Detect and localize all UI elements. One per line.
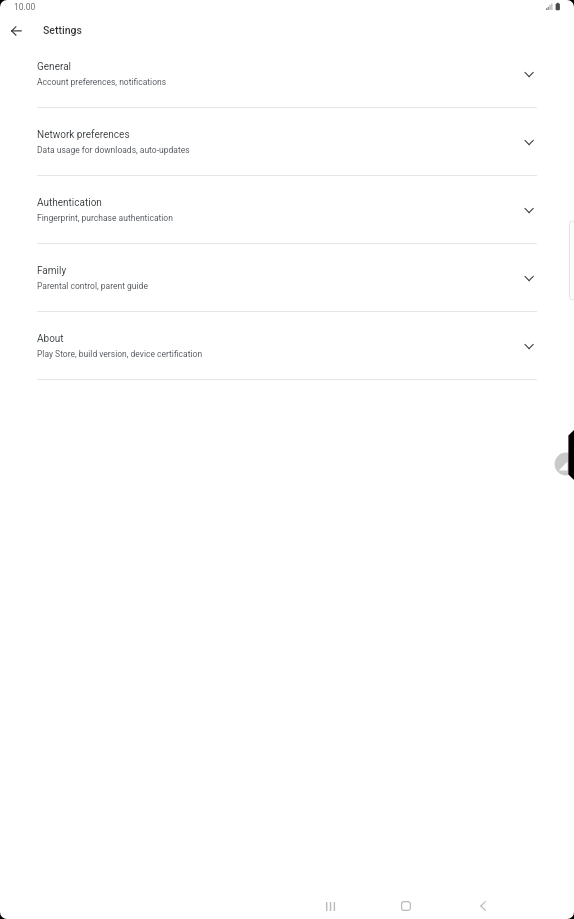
staticText: Account preferences, notifications — [37, 77, 167, 87]
staticText: General — [37, 61, 72, 73]
button[interactable]: Network preferences — [0, 124, 574, 186]
staticText: Network preferences — [37, 129, 130, 141]
button[interactable]: Back — [463, 886, 503, 919]
button[interactable]: Recent apps — [310, 886, 350, 919]
staticText: Parental control, parent guide — [37, 281, 148, 291]
button[interactable]: Home — [386, 886, 426, 919]
staticText: About — [37, 333, 64, 345]
staticText: Play Store, build version, device certif… — [37, 349, 203, 359]
button[interactable]: Authentication — [0, 192, 574, 254]
button[interactable]: General — [0, 56, 574, 118]
staticText: 10.00 — [14, 2, 36, 12]
staticText: Family — [37, 265, 67, 277]
staticText: Settings — [43, 24, 82, 36]
button[interactable]: Navigate up — [0, 15, 33, 48]
button[interactable]: About — [0, 328, 574, 390]
button[interactable]: Family — [0, 260, 574, 322]
button[interactable]: Open edge panel — [550, 425, 574, 485]
staticText: Fingerprint, purchase authentication — [37, 213, 173, 223]
staticText: Authentication — [37, 197, 102, 209]
staticText: Data usage for downloads, auto-updates — [37, 145, 190, 155]
